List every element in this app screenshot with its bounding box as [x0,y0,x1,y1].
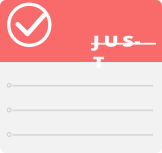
staticText: JUST [93,30,150,57]
